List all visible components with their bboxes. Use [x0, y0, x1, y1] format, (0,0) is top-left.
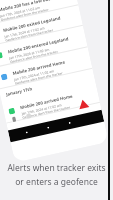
- button[interactable]: Mobile 200 arrived Home: [2, 81, 100, 124]
- staticText: Jan 17th, 2024 at 11:02 am: [0, 5, 40, 17]
- staticText: Jan 17th, 2024 at 11:02 am: [4, 25, 45, 38]
- staticText: or enters a geofence: [15, 176, 98, 188]
- staticText: Geofence alert from the tracker: [14, 70, 63, 85]
- staticText: Geofence alert from the tracker: [0, 7, 49, 21]
- staticText: Mobile 200 arrived Home: [19, 93, 73, 110]
- staticText: Jan 17th, 2024 at 11:02 am: [9, 47, 50, 59]
- staticText: Jan 17th, 2024 at 11:02 am: [13, 68, 54, 81]
- staticText: Geofence alert from the tracker: [9, 49, 58, 63]
- staticText: Mobile 200 exited Legoland: [2, 14, 61, 33]
- staticText: Mobile 200 arrived Home: [12, 58, 66, 76]
- staticText: Alerts when tracker exits: [7, 162, 106, 174]
- staticText: Mobile 200 has a low battery: [0, 0, 60, 13]
- button[interactable]: Notifications: [11, 116, 17, 122]
- staticText: Mobile 200 entered Legoland: [7, 35, 69, 54]
- button[interactable]: Mobile 200 arrived Home: [0, 0, 74, 4]
- button[interactable]: Mobile 200 has a low battery: [0, 0, 78, 26]
- staticText: January 17th: [5, 86, 33, 98]
- button[interactable]: SOS alert: [77, 97, 90, 110]
- button[interactable]: Mobile 200 arrived Home: [0, 47, 92, 89]
- button[interactable]: Mobile 200 exited Legoland: [0, 4, 83, 46]
- staticText: Geofence alert from the tracker: [5, 27, 53, 42]
- button[interactable]: Mobile 200 entered Legoland: [0, 26, 88, 68]
- button[interactable]: Profile: [26, 113, 32, 119]
- staticText: Jan 17th, 2024 at 11:02 am: [21, 102, 62, 115]
- staticText: Geofence alert from the tracker: [22, 104, 71, 119]
